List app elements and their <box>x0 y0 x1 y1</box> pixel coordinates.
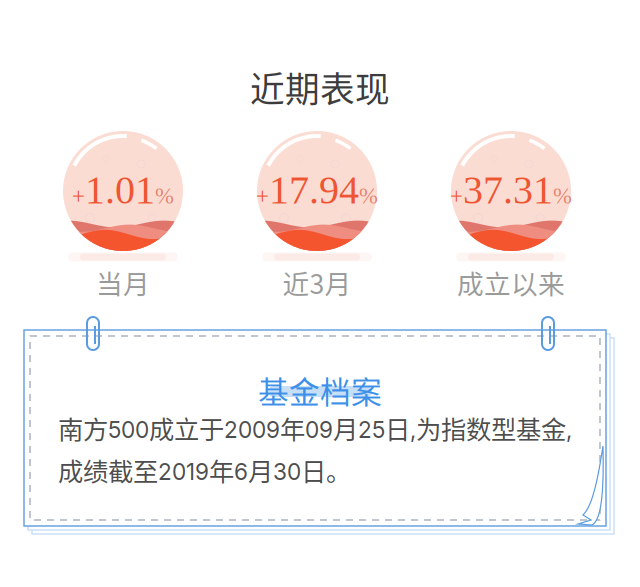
staticText: 1.01 <box>85 168 155 212</box>
staticText: 当月 <box>96 263 150 302</box>
staticText: 成绩截至2019年6月30日。 <box>58 452 351 488</box>
staticText: + <box>256 183 269 208</box>
staticText: 近期表现 <box>250 62 390 112</box>
staticText: + <box>450 183 463 208</box>
staticText: 近3月 <box>282 263 351 302</box>
staticText: 17.94 <box>269 168 359 212</box>
staticText: % <box>155 183 174 208</box>
staticText: 成立以来 <box>457 263 565 302</box>
staticText: % <box>553 183 572 208</box>
staticText: + <box>72 183 85 208</box>
staticText: 南方500成立于2009年09月25日,为指数型基金, <box>58 410 572 446</box>
staticText: % <box>359 183 378 208</box>
staticText: 基金档案 <box>258 368 382 412</box>
staticText: 37.31 <box>463 168 553 212</box>
